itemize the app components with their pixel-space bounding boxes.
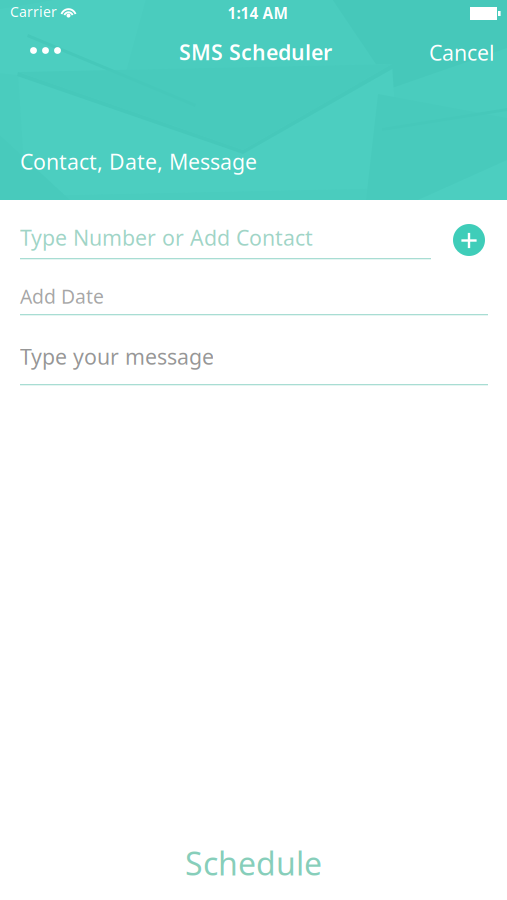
staticText: SMS Scheduler — [179, 37, 332, 67]
staticText: 1:14 AM — [227, 3, 287, 23]
button[interactable]: Schedule — [0, 834, 507, 892]
staticText: Schedule — [185, 841, 322, 885]
button[interactable]: Type Number or Add Contact — [0, 206, 443, 263]
button[interactable]: Add Date — [0, 265, 507, 320]
staticText: Type your message — [20, 342, 214, 371]
button[interactable]: Type your message — [0, 322, 507, 390]
staticText: Carrier — [10, 2, 57, 21]
staticText: Cancel — [429, 38, 495, 67]
staticText: Type Number or Add Contact — [20, 223, 313, 252]
button[interactable]: Cancel — [429, 32, 497, 64]
button[interactable]: More options — [29, 35, 87, 67]
staticText: Add Date — [20, 283, 104, 309]
staticText: Contact, Date, Message — [20, 147, 257, 176]
button[interactable]: Add contact — [453, 224, 485, 256]
